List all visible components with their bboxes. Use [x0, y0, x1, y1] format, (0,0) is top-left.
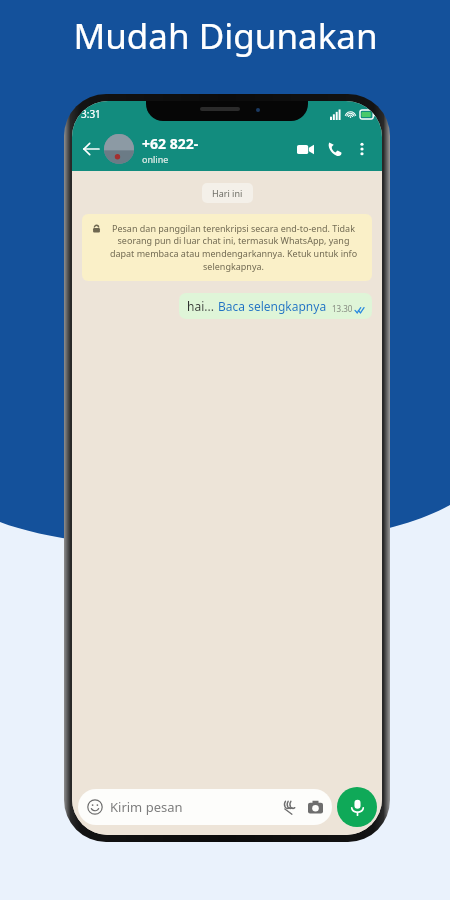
staticText: Pesan dan panggilan terenkripsi secara e… [105, 222, 362, 273]
button[interactable]: hai... [179, 293, 372, 319]
button[interactable]: +62 822- [142, 134, 290, 165]
staticText: Baca selengkapnya [218, 298, 327, 314]
button[interactable] [104, 134, 134, 164]
button[interactable]: Back [78, 136, 104, 162]
staticText: +62 822- [142, 134, 199, 153]
button[interactable]: Voice call [320, 134, 350, 164]
staticText: hai... [187, 298, 218, 314]
button[interactable]: Video call [290, 134, 320, 164]
button[interactable]: Hari ini [212, 187, 243, 199]
button[interactable]: More options [350, 137, 374, 161]
staticText: online [142, 153, 169, 165]
staticText: 3:31 [81, 107, 101, 121]
button[interactable]: Kirim pesan [78, 789, 332, 825]
button[interactable]: Record voice message [337, 787, 377, 827]
staticText: Mudah Digunakan [73, 12, 378, 60]
button[interactable]: Pesan dan panggilan terenkripsi secara e… [82, 214, 372, 281]
staticText: Kirim pesan [110, 798, 282, 816]
staticText: 13.30 [332, 303, 353, 314]
staticText: Hari ini [212, 187, 243, 199]
